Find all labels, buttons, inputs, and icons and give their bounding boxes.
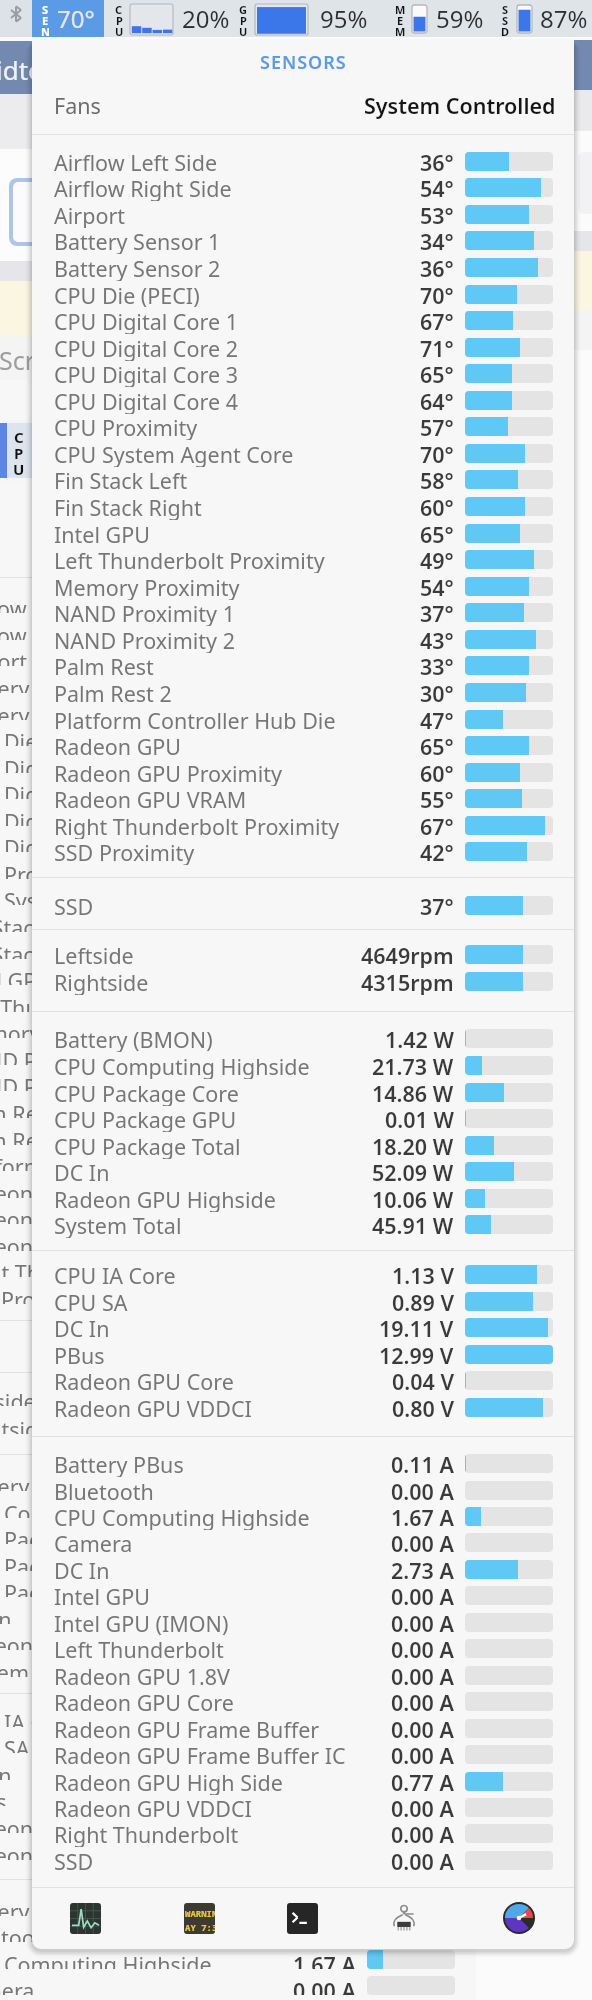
- staticText: 37°: [420, 892, 454, 919]
- button[interactable]: Fin Stack Right: [32, 493, 574, 520]
- button[interactable]: DC In: [32, 1556, 574, 1583]
- button[interactable]: CPU Computing Highside: [32, 1503, 574, 1530]
- button[interactable]: iStat Menus Settings: [497, 1896, 541, 1940]
- button[interactable]: Fin Stack Left: [32, 466, 574, 493]
- button[interactable]: Intel GPU: [32, 520, 574, 547]
- staticText: Palm Rest 2: [54, 679, 172, 706]
- staticText: 0.80 V: [392, 1394, 454, 1421]
- button[interactable]: Radeon GPU Frame Buffer: [32, 1715, 574, 1742]
- button[interactable]: NAND Proximity 2: [32, 626, 574, 653]
- staticText: 0.77 A: [391, 1768, 454, 1795]
- button[interactable]: Fans: [32, 91, 574, 119]
- staticText: C: [14, 427, 24, 443]
- button[interactable]: CPU Digital Core 1: [32, 307, 574, 334]
- button[interactable]: Radeon GPU VDDCI: [32, 1794, 574, 1821]
- staticText: CPU System Agent Core: [0, 886, 196, 905]
- button[interactable]: Radeon GPU Proximity: [32, 759, 574, 786]
- button[interactable]: CPU SA: [32, 1288, 574, 1315]
- button[interactable]: Right Thunderbolt Proximity: [32, 812, 574, 839]
- button[interactable]: CPU Package Total: [32, 1132, 574, 1159]
- button[interactable]: PBus: [32, 1341, 574, 1368]
- button[interactable]: Console: [177, 1896, 221, 1940]
- button[interactable]: Radeon GPU: [32, 732, 574, 759]
- button[interactable]: Memory Proximity: [32, 573, 574, 600]
- button[interactable]: CPU Die (PECI): [32, 281, 574, 308]
- button[interactable]: SSD Proximity: [32, 838, 574, 865]
- button[interactable]: CPU Digital Core 4: [32, 387, 574, 414]
- button[interactable]: Intel GPU: [32, 1582, 574, 1609]
- button[interactable]: Right Thunderbolt: [32, 1820, 574, 1847]
- button[interactable]: Radeon GPU High Side: [32, 1768, 574, 1795]
- button[interactable]: CPU Package Core: [32, 1079, 574, 1106]
- button[interactable]: Airport: [32, 201, 574, 228]
- button[interactable]: Intel GPU (IMON): [32, 1609, 574, 1636]
- button[interactable]: Radeon GPU VRAM: [32, 785, 574, 812]
- button[interactable]: Airflow Right Side: [32, 174, 574, 201]
- button[interactable]: Battery PBus: [32, 1450, 574, 1477]
- button[interactable]: DC In: [32, 1158, 574, 1185]
- button[interactable]: Camera: [32, 1529, 574, 1556]
- button[interactable]: SSD: [32, 892, 574, 919]
- button[interactable]: CPU System Agent Core: [32, 440, 574, 467]
- button[interactable]: Battery Sensor 2: [32, 254, 574, 281]
- staticText: 0.00 A: [391, 1477, 454, 1504]
- staticText: Airflow Left Side: [54, 148, 218, 175]
- button[interactable]: Platform Controller Hub Die: [32, 706, 574, 733]
- button[interactable]: M: [389, 0, 496, 37]
- staticText: Rightside: [0, 1415, 51, 1434]
- staticText: 18.20 W: [372, 1132, 454, 1159]
- button[interactable]: Radeon GPU Core: [32, 1688, 574, 1715]
- button[interactable]: Rightside: [32, 968, 574, 995]
- button[interactable]: Left Thunderbolt Proximity: [32, 546, 574, 573]
- button[interactable]: Leftside: [32, 941, 574, 968]
- button[interactable]: Activity Monitor: [63, 1896, 107, 1940]
- button[interactable]: Radeon GPU Core: [32, 1367, 574, 1394]
- button[interactable]: Airflow Left Side: [32, 148, 574, 175]
- button[interactable]: CPU Package GPU: [32, 1105, 574, 1132]
- staticText: SSD Proximity: [0, 1285, 97, 1304]
- staticText: 1.42 W: [385, 1025, 454, 1052]
- staticText: 60°: [420, 493, 454, 520]
- staticText: 36°: [420, 254, 454, 281]
- button[interactable]: Terminal: [280, 1896, 324, 1940]
- button[interactable]: G: [233, 0, 385, 37]
- button[interactable]: Battery Sensor 1: [32, 227, 574, 254]
- staticText: Right Thunderbolt Proximity: [54, 812, 340, 839]
- button[interactable]: System Total: [32, 1211, 574, 1238]
- button[interactable]: SSD: [32, 1847, 574, 1874]
- button[interactable]: CPU Computing Highside: [32, 1052, 574, 1079]
- button[interactable]: Radeon GPU 1.8V: [32, 1662, 574, 1689]
- button[interactable]: C: [108, 0, 232, 37]
- staticText: 19.11 V: [281, 1761, 356, 1780]
- button[interactable]: Palm Rest: [32, 652, 574, 679]
- button[interactable]: Radeon GPU VDDCI: [32, 1394, 574, 1421]
- button[interactable]: CPU Proximity: [32, 413, 574, 440]
- button[interactable]: DC In: [32, 1314, 574, 1341]
- staticText: 30°: [420, 679, 454, 706]
- button[interactable]: Bluetooth: [32, 1477, 574, 1504]
- staticText: 33°: [420, 652, 454, 679]
- button[interactable]: S: [494, 0, 592, 37]
- button[interactable]: Radeon GPU Frame Buffer IC: [32, 1741, 574, 1768]
- staticText: 0.00 A: [391, 1741, 454, 1768]
- button[interactable]: Palm Rest 2: [32, 679, 574, 706]
- button[interactable]: CPU Digital Core 3: [32, 360, 574, 387]
- button[interactable]: Hardware Monitor: [382, 1896, 426, 1940]
- button[interactable]: Bluetooth: [2, 0, 30, 28]
- button[interactable]: Left Thunderbolt: [32, 1635, 574, 1662]
- button[interactable]: Radeon GPU Highside: [32, 1185, 574, 1212]
- button[interactable]: CPU Digital Core 2: [32, 334, 574, 361]
- button[interactable]: Battery (BMON): [32, 1025, 574, 1052]
- button[interactable]: NAND Proximity 1: [32, 599, 574, 626]
- button[interactable]: S: [32, 0, 104, 37]
- staticText: CPU Package GPU: [54, 1105, 237, 1132]
- button[interactable]: CPU IA Core: [32, 1261, 574, 1288]
- staticText: Radeon GPU 1.8V: [54, 1662, 230, 1689]
- staticText: 67°: [420, 812, 454, 839]
